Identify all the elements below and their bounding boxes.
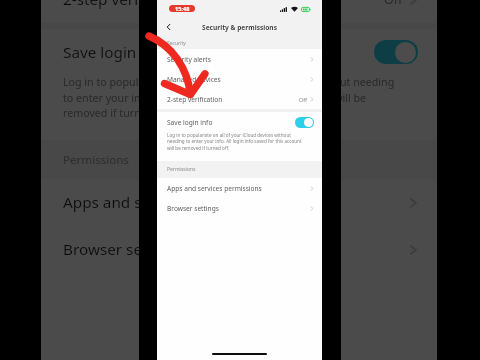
staticText: Security [167,40,186,47]
button[interactable]: 2-step verification [41,0,437,23]
button[interactable]: Apps and services permissions [41,179,437,226]
staticText: Security alerts [167,55,310,64]
staticText: Log in to popularsite on all of your iCl… [167,132,309,152]
staticText: Off [299,96,307,103]
staticText: 15:48 [175,5,190,12]
staticText: Managed devices [167,75,310,84]
staticText: Permissions [63,152,129,168]
button[interactable]: Browser settings [41,226,437,273]
staticText: Permissions [167,166,196,173]
button[interactable]: Save login info [157,112,322,132]
button[interactable]: Apps and services permissions [157,178,322,198]
button[interactable]: Back [160,19,176,35]
staticText: Save login info [63,42,374,63]
staticText: Save login info [167,118,295,127]
button[interactable]: Security alerts [157,49,322,69]
button[interactable]: 2-step verification [157,89,322,109]
staticText: Apps and services permissions [63,192,409,213]
button[interactable]: Managed devices [157,69,322,89]
staticText: Security & permissions [202,23,277,32]
button[interactable]: Save login info [41,29,437,75]
staticText: Browser settings [167,204,310,213]
staticText: 2-step verification [63,0,384,10]
staticText: Log in to popularsite on all of your iCl… [63,75,407,120]
button[interactable]: Browser settings [157,198,322,218]
staticText: 2-step verification [167,95,299,104]
staticText: Apps and services permissions [167,184,310,193]
staticText: Off [384,0,403,8]
staticText: Browser settings [63,239,409,260]
